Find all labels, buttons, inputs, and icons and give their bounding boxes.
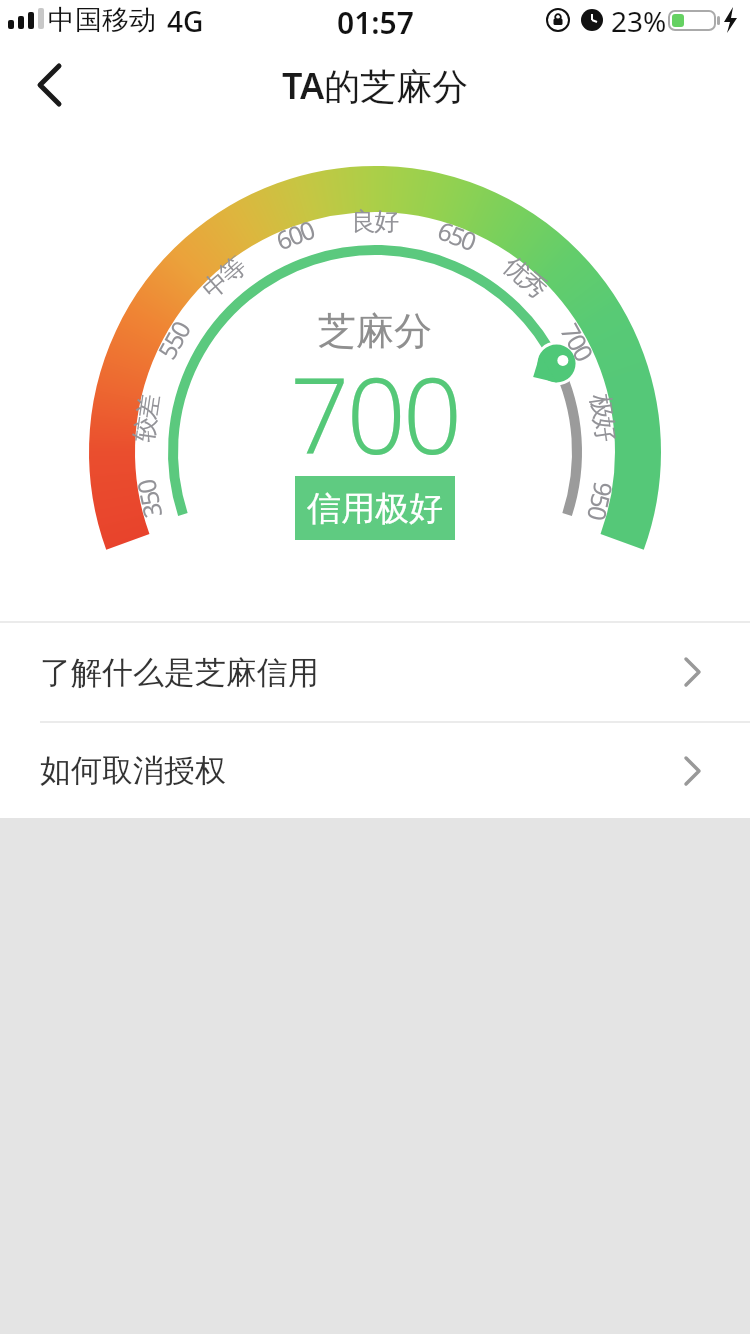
staticText: 700 — [290, 343, 460, 483]
staticText: TA的芝麻分 — [282, 61, 469, 110]
staticText: 信用极好 — [307, 487, 443, 530]
staticText: 如何取消授权 — [40, 751, 226, 790]
staticText: 了解什么是芝麻信用 — [40, 653, 319, 692]
button[interactable]: 如何取消授权 — [0, 723, 750, 818]
staticText: 中等 — [197, 251, 252, 304]
staticText: 550 — [149, 316, 197, 365]
staticText: 中国移动 — [48, 3, 156, 37]
staticText: 较差 — [128, 393, 165, 443]
staticText: 23% — [611, 2, 667, 38]
staticText: 350 — [128, 478, 169, 521]
staticText: 芝麻分 — [318, 307, 432, 355]
button[interactable]: 了解什么是芝麻信用 — [0, 623, 750, 721]
staticText: 01:57 — [337, 2, 414, 38]
staticText: 优秀 — [498, 251, 553, 304]
staticText: 4G — [167, 2, 204, 38]
staticText: 950 — [580, 479, 621, 522]
staticText: 650 — [433, 213, 480, 258]
staticText: 良好 — [352, 206, 398, 237]
button[interactable]: 信用极好 — [295, 476, 455, 540]
staticText: 600 — [271, 212, 318, 257]
staticText: 极好 — [585, 393, 622, 443]
button[interactable] — [20, 52, 80, 120]
staticText: 700 — [553, 317, 601, 366]
